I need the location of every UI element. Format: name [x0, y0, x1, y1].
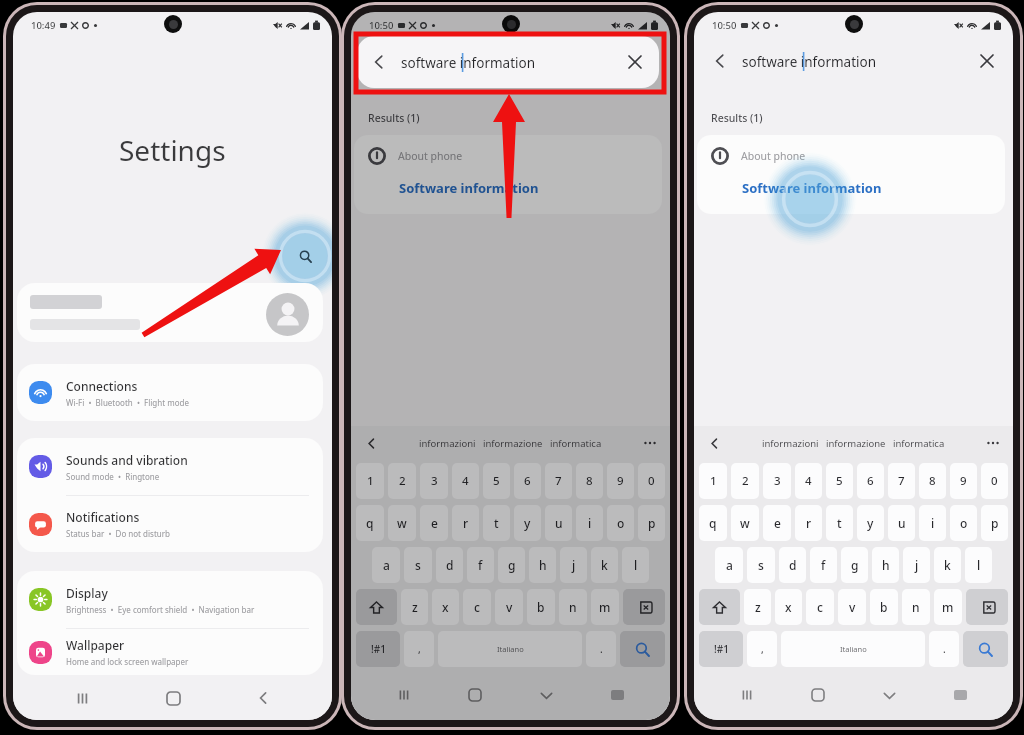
button[interactable]: f	[467, 547, 494, 583]
button[interactable]: d	[436, 547, 463, 583]
button[interactable]: Switch keyboard	[942, 677, 978, 713]
button[interactable]: 3	[420, 463, 448, 499]
button[interactable]: v	[838, 589, 866, 625]
button[interactable]: e	[420, 505, 448, 541]
button[interactable]: w	[731, 505, 759, 541]
button[interactable]: z	[401, 589, 428, 625]
button[interactable]: s	[747, 547, 775, 583]
button[interactable]: ,	[404, 631, 434, 667]
button[interactable]: 3	[763, 463, 791, 499]
button[interactable]: 0	[981, 463, 1008, 499]
button[interactable]: m	[934, 589, 962, 625]
button[interactable]: ,	[747, 631, 777, 667]
button[interactable]: Clear search	[623, 50, 647, 74]
button[interactable]: Recents	[61, 677, 103, 719]
button[interactable]: v	[495, 589, 523, 625]
button[interactable]: y	[857, 505, 884, 541]
button[interactable]: 5	[826, 463, 853, 499]
button[interactable]: Italiano	[781, 631, 925, 667]
button[interactable]: n	[559, 589, 587, 625]
button[interactable]: 8	[576, 463, 603, 499]
button[interactable]: About phone	[354, 135, 662, 214]
button[interactable]: Italiano	[438, 631, 582, 667]
button[interactable]: e	[763, 505, 791, 541]
button[interactable]: i	[576, 505, 603, 541]
button[interactable]: x	[432, 589, 459, 625]
button[interactable]: 6	[514, 463, 541, 499]
button[interactable]: d	[779, 547, 806, 583]
button[interactable]: Home	[457, 677, 493, 713]
button[interactable]: Home	[152, 677, 194, 719]
button[interactable]: Back	[708, 49, 732, 73]
button[interactable]: Switch keyboard	[599, 677, 635, 713]
button[interactable]: Back	[694, 38, 1013, 84]
button[interactable]: 2	[731, 463, 759, 499]
button[interactable]: Recents	[729, 677, 765, 713]
button[interactable]: 4	[452, 463, 479, 499]
button[interactable]: a	[715, 547, 743, 583]
button[interactable]: g	[498, 547, 525, 583]
button[interactable]: p	[981, 505, 1008, 541]
button[interactable]: Back	[357, 36, 659, 88]
button[interactable]: Display	[17, 571, 323, 628]
button[interactable]: y	[514, 505, 541, 541]
button[interactable]: i	[919, 505, 946, 541]
button[interactable]: 1	[356, 463, 384, 499]
button[interactable]: u	[545, 505, 572, 541]
button[interactable]: 7	[888, 463, 915, 499]
button[interactable]: Clear search	[975, 49, 999, 73]
button[interactable]: m	[591, 589, 619, 625]
button[interactable]: 5	[483, 463, 510, 499]
button[interactable]: r	[452, 505, 479, 541]
button[interactable]: w	[388, 505, 416, 541]
button[interactable]: .	[929, 631, 959, 667]
button[interactable]: Search	[288, 239, 322, 273]
button[interactable]: a	[372, 547, 400, 583]
button[interactable]: t	[826, 505, 853, 541]
button[interactable]: f	[810, 547, 837, 583]
button[interactable]: Connections	[17, 364, 323, 421]
button[interactable]: 0	[638, 463, 665, 499]
button[interactable]: k	[934, 547, 961, 583]
button[interactable]: b	[870, 589, 898, 625]
button[interactable]: Search	[963, 631, 1008, 667]
button[interactable]: l	[965, 547, 992, 583]
button[interactable]: !#1	[699, 631, 743, 667]
button[interactable]: c	[463, 589, 491, 625]
button[interactable]: 2	[388, 463, 416, 499]
button[interactable]: o	[607, 505, 634, 541]
button[interactable]: Back	[242, 677, 284, 719]
button[interactable]: l	[622, 547, 649, 583]
button[interactable]: More options	[642, 435, 658, 451]
button[interactable]: k	[591, 547, 618, 583]
button[interactable]: s	[404, 547, 432, 583]
button[interactable]: 8	[919, 463, 946, 499]
button[interactable]: h	[872, 547, 899, 583]
button[interactable]: r	[795, 505, 822, 541]
button[interactable]: b	[527, 589, 555, 625]
button[interactable]: Previous suggestions	[706, 435, 722, 451]
button[interactable]: z	[744, 589, 771, 625]
button[interactable]: n	[902, 589, 930, 625]
button[interactable]: Backspace	[623, 589, 665, 625]
button[interactable]: Sounds and vibration	[17, 438, 323, 495]
button[interactable]: Previous suggestions	[363, 435, 379, 451]
button[interactable]: 7	[545, 463, 572, 499]
button[interactable]: Back	[367, 50, 391, 74]
button[interactable]: More options	[985, 435, 1001, 451]
button[interactable]: About phone	[697, 135, 1005, 214]
button[interactable]: p	[638, 505, 665, 541]
button[interactable]: j	[903, 547, 930, 583]
button[interactable]: o	[950, 505, 977, 541]
button[interactable]: 9	[950, 463, 977, 499]
button[interactable]: t	[483, 505, 510, 541]
button[interactable]: u	[888, 505, 915, 541]
button[interactable]: x	[775, 589, 802, 625]
button[interactable]: Hide keyboard	[871, 677, 907, 713]
button[interactable]: 1	[699, 463, 727, 499]
button[interactable]: j	[560, 547, 587, 583]
button[interactable]: Shift	[699, 589, 740, 625]
button[interactable]: Clear search	[632, 49, 656, 73]
button[interactable]: 9	[607, 463, 634, 499]
button[interactable]: Backspace	[966, 589, 1008, 625]
